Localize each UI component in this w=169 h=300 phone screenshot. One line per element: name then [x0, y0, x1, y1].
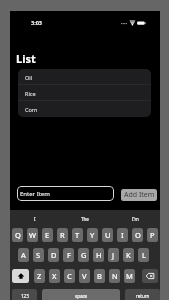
button[interactable]: P — [147, 228, 158, 242]
staticText: 3:03 — [31, 19, 42, 26]
button[interactable]: space — [42, 289, 120, 300]
staticText: H — [96, 250, 102, 260]
staticText: Y — [90, 230, 95, 240]
staticText: Rice — [25, 90, 36, 97]
button[interactable]: List — [16, 51, 36, 66]
button[interactable]: X — [49, 269, 60, 283]
staticText: Q — [15, 230, 21, 240]
staticText: R — [60, 230, 65, 240]
staticText: C — [67, 271, 72, 281]
button[interactable]: H — [93, 248, 104, 262]
staticText: T — [75, 230, 80, 240]
button[interactable]: return — [125, 289, 160, 300]
button[interactable]: E — [42, 228, 53, 242]
staticText: V — [82, 271, 87, 281]
staticText: Add Item — [124, 190, 155, 200]
button[interactable]: F — [63, 248, 74, 262]
staticText: X — [52, 271, 57, 281]
button[interactable]: V — [79, 269, 90, 283]
button[interactable]: Q — [12, 228, 23, 242]
staticText: return — [136, 293, 150, 299]
staticText: A — [21, 250, 26, 260]
button[interactable]: The — [60, 210, 110, 228]
button[interactable]: S — [33, 248, 44, 262]
staticText: Z — [37, 271, 42, 281]
button[interactable]: J — [108, 248, 119, 262]
staticText: List — [16, 51, 36, 66]
button[interactable]: G — [78, 248, 89, 262]
button[interactable]: Shift — [12, 269, 29, 283]
staticText: I — [121, 230, 124, 240]
staticText: D — [51, 250, 57, 260]
button[interactable]: O — [132, 228, 143, 242]
button[interactable]: I'm — [110, 210, 160, 228]
button[interactable]: Corn — [18, 101, 151, 117]
staticText: K — [126, 250, 131, 260]
button[interactable]: U — [102, 228, 113, 242]
button[interactable]: I — [117, 228, 128, 242]
staticText: B — [97, 271, 102, 281]
staticText: L — [142, 250, 146, 260]
button[interactable]: Rice — [18, 85, 151, 101]
staticText: G — [81, 250, 87, 260]
button[interactable]: R — [57, 228, 68, 242]
button[interactable]: Delete — [142, 269, 158, 283]
staticText: space — [75, 293, 88, 299]
button[interactable]: B — [94, 269, 105, 283]
staticText: Corn — [25, 106, 38, 113]
staticText: Enter Item — [20, 190, 50, 198]
staticText: P — [150, 230, 155, 240]
staticText: J — [112, 250, 115, 260]
staticText: N — [112, 271, 118, 281]
button[interactable]: D — [48, 248, 59, 262]
staticText: E — [45, 230, 50, 240]
button[interactable]: M — [124, 269, 135, 283]
button[interactable]: N — [109, 269, 120, 283]
staticText: W — [29, 230, 36, 240]
button[interactable]: L — [138, 248, 149, 262]
button[interactable]: Enter Item — [17, 186, 114, 201]
button[interactable]: Add Item — [121, 189, 157, 201]
button[interactable]: K — [123, 248, 134, 262]
button[interactable]: 123 — [12, 289, 37, 300]
button[interactable]: Z — [34, 269, 45, 283]
staticText: I — [34, 216, 36, 222]
button[interactable]: Oil — [18, 69, 151, 85]
button[interactable]: I — [10, 210, 60, 228]
staticText: F — [67, 250, 71, 260]
staticText: O — [135, 230, 141, 240]
staticText: M — [126, 271, 133, 281]
button[interactable]: W — [27, 228, 38, 242]
button[interactable]: A — [18, 248, 29, 262]
staticText: Oil — [25, 74, 33, 81]
staticText: The — [81, 216, 89, 222]
button[interactable]: Y — [87, 228, 98, 242]
staticText: S — [36, 250, 41, 260]
staticText: I'm — [132, 216, 139, 222]
button[interactable]: C — [64, 269, 75, 283]
staticText: 123 — [21, 293, 29, 299]
button[interactable]: T — [72, 228, 83, 242]
staticText: U — [105, 230, 111, 240]
